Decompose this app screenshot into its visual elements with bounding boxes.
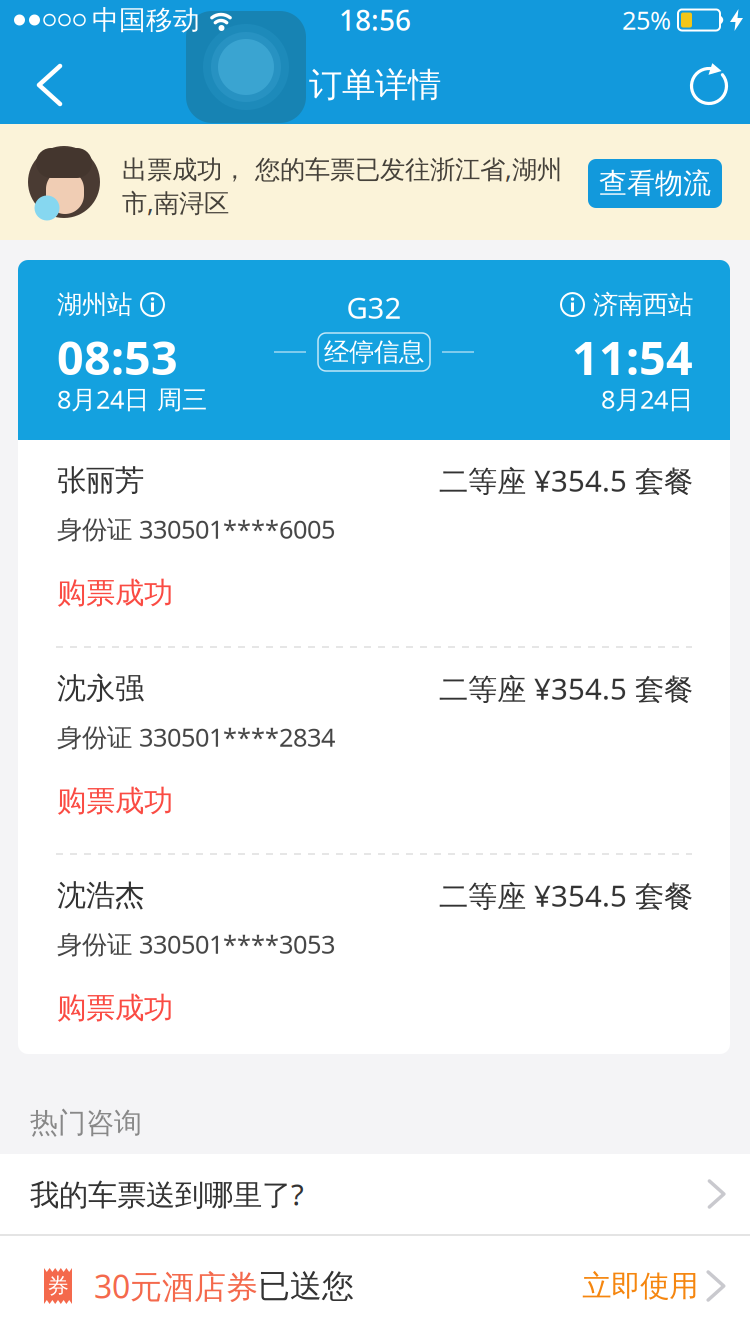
staticText: 查看物流 (599, 166, 711, 201)
button[interactable]: 湖州站 信息 (57, 289, 164, 320)
staticText: 购票成功 (57, 575, 173, 611)
staticText: 8月24日 (601, 382, 693, 416)
staticText: 11:54 (572, 326, 693, 388)
button[interactable]: 我的车票送到哪里了? (0, 1154, 750, 1234)
staticText: 中国移动 (92, 4, 200, 36)
button[interactable]: 查看物流 (588, 159, 722, 208)
staticText: 市,南浔区 (122, 186, 229, 219)
staticText: 订单详情 (309, 64, 441, 105)
staticText: 购票成功 (57, 990, 173, 1026)
staticText: 立即使用 (582, 1268, 698, 1304)
staticText: 济南西站 (593, 289, 693, 320)
staticText: 我的车票送到哪里了? (30, 1174, 304, 1213)
staticText: 经停信息 (324, 336, 424, 367)
staticText: 二等座 ¥354.5 套餐 (439, 461, 693, 500)
staticText: 30元酒店券 (94, 1265, 258, 1307)
staticText: G32 (346, 288, 401, 327)
staticText: 二等座 ¥354.5 套餐 (439, 669, 693, 708)
staticText: 8月24日 周三 (57, 382, 207, 416)
staticText: 18:56 (339, 1, 411, 39)
staticText: 沈永强 (57, 670, 144, 706)
staticText: 券 (47, 1273, 68, 1299)
staticText: 25% (622, 3, 671, 37)
staticText: 沈浩杰 (57, 877, 144, 913)
staticText: 热门咨询 (30, 1106, 142, 1140)
button[interactable]: 返回 (0, 46, 64, 124)
staticText: 身份证 330501****6005 (57, 512, 335, 546)
button[interactable]: 刷新 (688, 45, 750, 125)
staticText: 二等座 ¥354.5 套餐 (439, 876, 693, 915)
button[interactable]: 济南西站 信息 (561, 289, 693, 320)
staticText: 08:53 (57, 326, 178, 388)
button[interactable]: 经停信息 (274, 333, 474, 371)
staticText: 身份证 330501****3053 (57, 927, 335, 961)
button[interactable]: 券 (0, 1236, 750, 1334)
staticText: 出票成功， 您的车票已发往浙江省,湖州 (122, 152, 562, 186)
staticText: 已送您 (258, 1266, 354, 1306)
staticText: 张丽芳 (57, 462, 144, 498)
staticText: 购票成功 (57, 783, 173, 819)
staticText: 身份证 330501****2834 (57, 720, 335, 754)
staticText: 湖州站 (57, 289, 132, 320)
